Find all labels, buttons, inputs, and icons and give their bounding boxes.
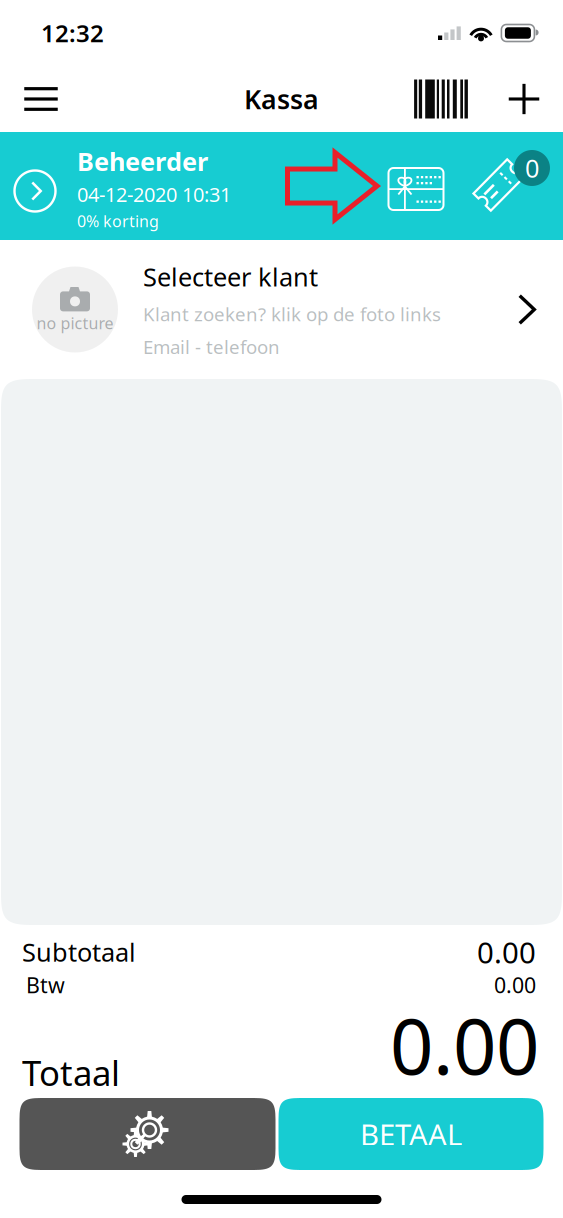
staticText: 0% korting [77,210,159,232]
button[interactable]: Gift card [381,135,451,243]
staticText: Beheerder [77,144,208,178]
staticText: 04-12-2020 10:31 [77,181,231,207]
button[interactable]: Menu [7,68,75,130]
staticText: Email - telefoon [143,334,280,359]
staticText: 0.00 [494,971,536,999]
staticText: Klant zoeken? klik op de foto links [143,301,441,326]
staticText: Totaal [22,1049,120,1095]
staticText: 0.00 [390,994,539,1095]
button[interactable]: Open session [4,137,66,245]
staticText: Btw [26,971,65,999]
button[interactable]: New sale [485,68,563,130]
staticText: Selecteer klant [143,260,318,293]
button[interactable]: Scan barcode [397,68,485,130]
staticText: Subtotaal [22,935,136,969]
staticText: 0.00 [477,932,536,971]
button[interactable]: BETAAL [278,1098,543,1170]
button[interactable]: Parked receipts [470,132,560,240]
staticText: 12:32 [41,17,104,49]
staticText: 0 [525,151,539,185]
staticText: BETAAL [360,1114,462,1153]
button[interactable]: no picture [0,240,563,379]
staticText: Kassa [244,81,319,117]
button[interactable]: Settings [19,1098,275,1170]
staticText: no picture [36,312,113,334]
